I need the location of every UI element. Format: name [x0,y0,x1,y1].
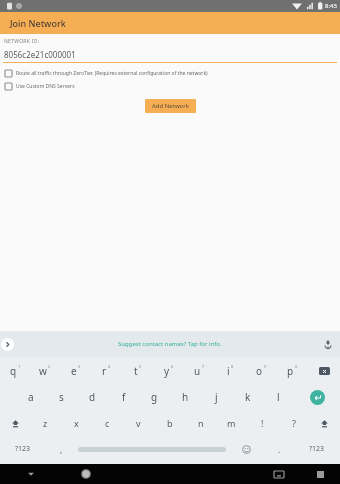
button[interactable]: o [246,357,277,384]
button[interactable]: Backspace [308,357,340,384]
button[interactable]: ?123 [0,436,46,462]
button[interactable]: d [77,384,108,410]
staticText: 9 [264,364,267,369]
button[interactable]: Hide keyboard [0,464,62,484]
button[interactable]: 8056c2e21c000001 [0,49,340,63]
button[interactable]: r [91,357,122,384]
button[interactable]: j [201,384,232,410]
staticText: p [287,364,294,378]
staticText: i [227,364,230,378]
staticText: r [102,364,107,378]
button[interactable]: Shift [309,410,340,436]
staticText: 8:45 [325,2,337,10]
button[interactable]: Enter [294,384,340,410]
button[interactable]: ?123 [294,436,340,462]
staticText: 5 [139,364,142,369]
staticText: o [256,364,263,378]
staticText: b [167,417,173,429]
staticText: Route all traffic through ZeroTier. (Req… [16,70,208,77]
button[interactable]: m [216,410,247,436]
button[interactable]: ! [247,410,278,436]
button[interactable]: w [30,357,60,384]
staticText: 7 [202,364,205,369]
staticText: Join Network [10,17,66,29]
button[interactable]: g [139,384,170,410]
staticText: NETWORK ID: [4,38,40,45]
button[interactable]: Home [62,464,110,484]
button[interactable]: f [108,384,139,410]
staticText: h [182,390,189,404]
button[interactable]: Expand suggestions [1,338,14,351]
button[interactable]: p [277,357,308,384]
button[interactable]: i [215,357,246,384]
button[interactable]: y [153,357,184,384]
button[interactable]: u [184,357,215,384]
staticText: 4 [108,364,111,369]
staticText: f [122,390,126,404]
staticText: c [105,417,110,429]
staticText: 1 [18,364,21,369]
button[interactable]: Suggest contact names? Tap for info. [118,340,222,348]
staticText: l [277,390,280,404]
button[interactable]: n [185,410,216,436]
staticText: g [151,390,158,404]
button[interactable]: Add Network [145,99,196,113]
button[interactable]: l [263,384,294,410]
button[interactable]: h [170,384,201,410]
button[interactable]: Use Custom DNS Servers [0,81,340,92]
button[interactable]: z [30,410,61,436]
staticText: s [59,390,64,404]
staticText: 2 [48,364,51,369]
button[interactable]: Switch keyboard [258,464,300,484]
staticText: e [71,364,77,378]
staticText: n [198,417,204,429]
staticText: . [278,444,281,455]
button[interactable]: c [92,410,123,436]
staticText: u [194,364,201,378]
button[interactable]: x [61,410,92,436]
button[interactable]: k [232,384,263,410]
button[interactable]: Voice input [322,338,334,350]
button[interactable]: s [46,384,77,410]
button[interactable]: q [0,357,30,384]
staticText: ?123 [309,444,325,454]
button[interactable]: Shift [0,410,30,436]
staticText: j [215,390,218,404]
staticText: a [28,390,34,404]
button[interactable]: ? [278,410,309,436]
button[interactable]: e [60,357,91,384]
staticText: x [74,417,79,429]
staticText: y [164,364,170,378]
staticText: q [10,364,17,378]
staticText: 8 [231,364,234,369]
staticText: Add Network [152,102,189,110]
button[interactable]: t [122,357,153,384]
button[interactable]: , [46,436,76,462]
button[interactable]: v [123,410,154,436]
button[interactable]: a [16,384,46,410]
button[interactable]: Space [76,436,228,462]
staticText: , [60,444,63,455]
staticText: 3 [78,364,81,369]
staticText: m [227,417,236,429]
button[interactable]: b [154,410,185,436]
staticText: ?123 [15,444,31,454]
staticText: ? [292,417,296,429]
staticText: 8056c2e21c000001 [4,49,76,60]
staticText: 6 [171,364,174,369]
staticText: ! [261,417,264,429]
staticText: t [134,364,138,378]
button[interactable]: Emoji [228,436,264,462]
staticText: z [43,417,48,429]
button[interactable]: Recents [300,464,340,484]
staticText: 0 [295,364,298,369]
staticText: v [136,417,141,429]
staticText: Use Custom DNS Servers [16,83,75,90]
staticText: w [39,364,47,378]
button[interactable]: Route all traffic through ZeroTier. (Req… [0,68,340,79]
staticText: k [245,390,251,404]
staticText: d [89,390,96,404]
